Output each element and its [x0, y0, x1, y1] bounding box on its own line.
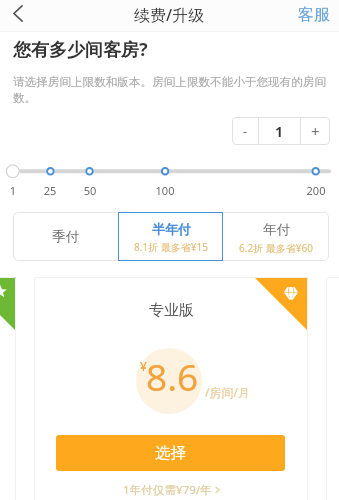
button[interactable]: 客服 [298, 0, 330, 32]
staticText: 半年付 [152, 221, 191, 237]
button[interactable]: 专业版 [34, 277, 308, 500]
staticText: 季付 [52, 228, 79, 245]
staticText: 50 [76, 183, 104, 198]
staticText: 25 [36, 183, 64, 198]
button[interactable]: Increase [301, 117, 330, 145]
staticText: 选择 [155, 443, 186, 463]
staticText: 年付 [263, 221, 290, 238]
staticText: 8.1折 最多省¥15 [134, 240, 208, 254]
staticText: 专业版 [149, 301, 194, 320]
staticText: 1 [0, 183, 27, 198]
staticText: ¥ [140, 358, 147, 374]
button[interactable]: 选择 [56, 435, 285, 471]
staticText: 200 [302, 183, 330, 198]
staticText: 6.2折 最多省¥60 [239, 241, 313, 255]
staticText: 请选择房间上限数和版本。房间上限数不能小于您现有的房间数。 [13, 75, 331, 105]
button[interactable]: Decrease [232, 117, 258, 145]
staticText: 1 [275, 122, 284, 141]
button[interactable]: Back [0, 0, 38, 32]
staticText: - [243, 122, 248, 140]
staticText: 续费/升级 [134, 4, 205, 26]
button[interactable]: 半年付 [118, 212, 223, 261]
staticText: 客服 [298, 5, 330, 25]
button[interactable]: 1年付仅需¥79/年 [123, 482, 220, 498]
button[interactable]: 季付 [13, 212, 118, 261]
button[interactable]: 年付 [223, 212, 328, 261]
staticText: 100 [151, 183, 179, 198]
staticText: /房间/月 [205, 384, 250, 400]
staticText: 1年付仅需¥79/年 [123, 482, 212, 498]
staticText: 您有多少间客房? [13, 37, 148, 62]
staticText: + [311, 121, 320, 141]
staticText: 8.6 [146, 351, 199, 401]
